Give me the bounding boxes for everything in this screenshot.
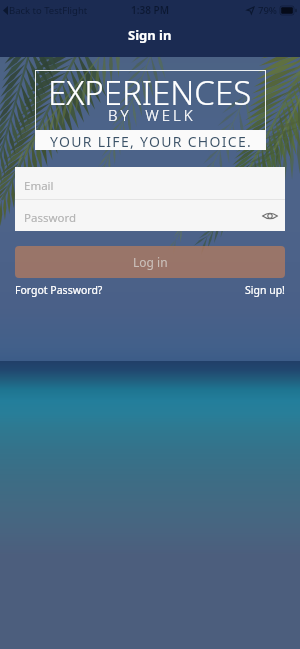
button[interactable]: Sign up! xyxy=(245,283,285,297)
staticText: BY WELK xyxy=(108,105,196,125)
staticText: 79% xyxy=(258,4,277,17)
staticText: Log in xyxy=(133,254,168,270)
button[interactable]: Log in xyxy=(15,246,285,278)
staticText: Email xyxy=(24,178,54,194)
staticText: 1:38 PM xyxy=(131,3,169,17)
staticText: EXPERIENCES xyxy=(48,70,252,115)
button[interactable]: Password xyxy=(15,200,285,231)
button[interactable]: Email xyxy=(15,167,285,199)
staticText: YOUR LIFE, YOUR CHOICE. xyxy=(50,132,253,151)
staticText: Sign in xyxy=(128,26,172,44)
staticText: Password xyxy=(24,210,77,226)
staticText: Forgot Password? xyxy=(15,283,103,297)
button[interactable]: Forgot Password? xyxy=(15,283,103,297)
staticText: Sign up! xyxy=(245,283,285,297)
button[interactable]: Show password xyxy=(262,208,278,224)
staticText: Back to TestFlight xyxy=(9,4,88,17)
